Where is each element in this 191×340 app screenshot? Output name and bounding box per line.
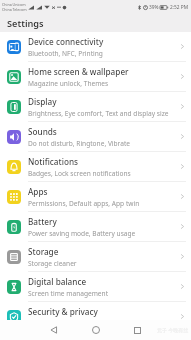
staticText: Magazine unlock, Themes — [28, 79, 109, 88]
button[interactable]: Sounds — [0, 122, 191, 152]
staticText: Security & privacy — [28, 306, 98, 317]
staticText: 2:52 PM — [170, 4, 189, 11]
button[interactable]: Home — [88, 322, 104, 338]
button[interactable]: Back — [46, 322, 62, 338]
staticText: Brightness, Eye comfort, Text and displa… — [28, 109, 169, 118]
staticText: Storage cleaner — [28, 259, 77, 268]
staticText: Power saving mode, Battery usage — [28, 229, 136, 238]
staticText: Screen time management — [28, 289, 109, 298]
staticText: Display — [28, 96, 57, 107]
staticText: Badges, Lock screen notifications — [28, 169, 131, 178]
staticText: Home screen & wallpaper — [28, 66, 129, 77]
button[interactable]: Security & privacy — [0, 302, 191, 332]
staticText: Storage — [28, 246, 59, 257]
staticText: 元子 今晚有丝 — [157, 327, 189, 334]
button[interactable]: Notifications — [0, 152, 191, 182]
staticText: Sounds — [28, 126, 57, 137]
button[interactable]: Storage — [0, 242, 191, 272]
staticText: 39% — [149, 4, 159, 11]
staticText: Permissions, Default apps, App twin — [28, 199, 140, 208]
button[interactable]: Device connectivity — [0, 32, 191, 62]
button[interactable]: Home screen & wallpaper — [0, 62, 191, 92]
staticText: Notifications — [28, 156, 78, 167]
staticText: Apps — [28, 186, 48, 197]
staticText: Battery — [28, 216, 57, 227]
staticText: China Telecom — [2, 7, 27, 12]
button[interactable]: Digital balance — [0, 272, 191, 302]
staticText: Device connectivity — [28, 36, 104, 47]
staticText: Bluetooth, NFC, Printing — [28, 49, 103, 58]
staticText: China Unicom — [2, 2, 26, 7]
button[interactable]: Recent apps — [129, 322, 145, 338]
button[interactable]: Battery — [0, 212, 191, 242]
button[interactable]: Display — [0, 92, 191, 122]
staticText: Do not disturb, Ringtone, Vibrate — [28, 139, 130, 148]
staticText: Face recognition, Fingerprint ID, Lock s… — [28, 319, 166, 328]
button[interactable]: Apps — [0, 182, 191, 212]
staticText: Settings — [7, 17, 44, 30]
staticText: Digital balance — [28, 276, 87, 287]
